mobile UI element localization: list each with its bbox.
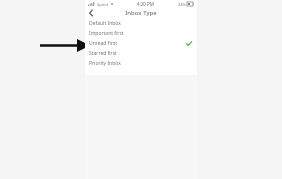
staticText: Default Inbox (89, 20, 121, 27)
staticText: Unread first (89, 40, 117, 47)
staticText: Sprint (97, 2, 109, 7)
button[interactable]: Unread first (85, 38, 197, 48)
staticText: Inbox Type (125, 9, 157, 17)
button[interactable]: Priority Inbox (85, 58, 197, 68)
button[interactable]: Starred first (85, 48, 197, 58)
staticText: Important first (89, 30, 124, 37)
staticText: 4:20 PM (137, 1, 154, 7)
button[interactable]: Back (85, 8, 97, 18)
staticText: Priority Inbox (89, 60, 121, 67)
button[interactable]: Important first (85, 28, 197, 38)
button[interactable]: Default Inbox (85, 18, 197, 28)
staticText: Starred first (89, 50, 117, 57)
staticText: 34% (178, 2, 186, 7)
